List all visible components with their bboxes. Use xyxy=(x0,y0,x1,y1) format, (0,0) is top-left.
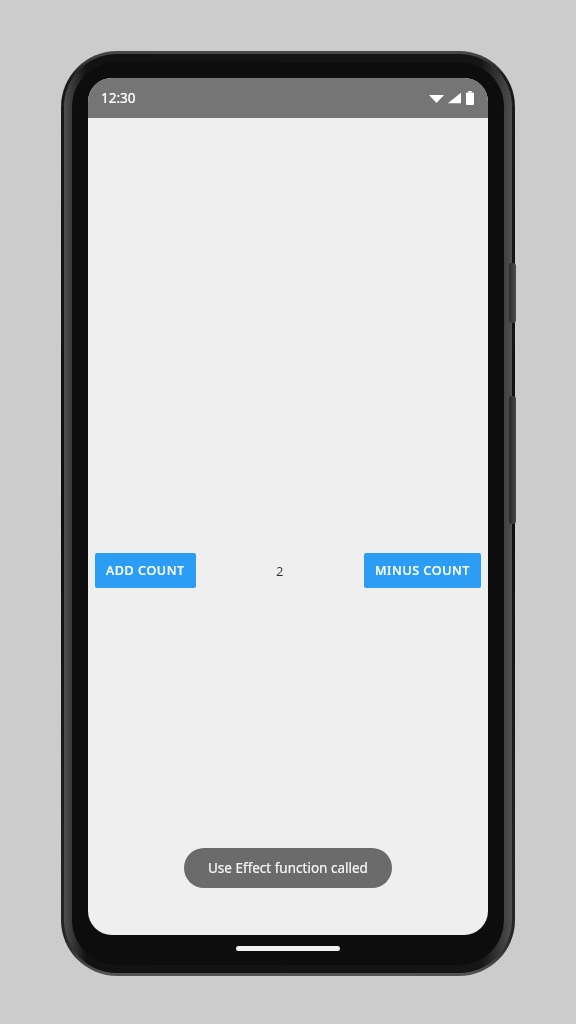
staticText: ADD COUNT xyxy=(106,562,185,579)
button[interactable]: Use Effect function called xyxy=(184,848,392,888)
button[interactable]: MINUS COUNT xyxy=(364,553,481,588)
staticText: Use Effect function called xyxy=(208,859,368,877)
staticText: 2 xyxy=(276,562,284,580)
staticText: 12:30 xyxy=(101,89,136,107)
button[interactable]: ADD COUNT xyxy=(95,553,196,588)
staticText: MINUS COUNT xyxy=(375,562,470,579)
